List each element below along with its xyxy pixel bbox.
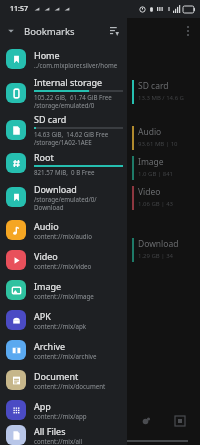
staticText: content://mix/all bbox=[34, 437, 83, 445]
staticText: 93.61 MB | 10 bbox=[138, 140, 178, 148]
staticText: Internal storage bbox=[34, 76, 103, 88]
button[interactable]: More options bbox=[179, 22, 197, 40]
staticText: 1.29 GB | 34 bbox=[138, 252, 174, 260]
button[interactable]: Video bbox=[132, 186, 200, 210]
staticText: content://mix/document bbox=[34, 382, 106, 390]
staticText: /storage/emulated/0/ bbox=[34, 195, 97, 203]
staticText: APK bbox=[34, 310, 51, 322]
staticText: Download bbox=[138, 238, 179, 250]
staticText: /storage/1A02-1AEE bbox=[34, 138, 92, 146]
button[interactable]: SD card bbox=[0, 111, 127, 148]
button[interactable]: Sort bbox=[104, 21, 124, 41]
staticText: 1.06 GB | 43 bbox=[138, 200, 174, 208]
staticText: Video bbox=[34, 250, 58, 262]
staticText: content://mix/audio bbox=[34, 232, 92, 240]
button[interactable]: Internal storage bbox=[0, 74, 127, 111]
button[interactable]: Root bbox=[0, 148, 127, 178]
button[interactable]: Bookmarks bbox=[0, 18, 127, 44]
staticText: Root bbox=[34, 151, 54, 163]
button[interactable]: Archive bbox=[0, 335, 127, 365]
button[interactable]: Home bbox=[0, 44, 127, 74]
staticText: Archive bbox=[34, 340, 66, 352]
staticText: Download bbox=[34, 203, 64, 211]
staticText: All Files bbox=[34, 425, 66, 437]
staticText: Audio bbox=[138, 126, 162, 138]
staticText: 821.57 MiB, 0 B Free bbox=[34, 168, 95, 176]
staticText: ../com.mixplorer.silver/home bbox=[34, 61, 118, 69]
staticText: /storage/emulated/0 bbox=[34, 101, 95, 109]
button[interactable]: Download bbox=[132, 238, 200, 262]
button[interactable]: Audio bbox=[132, 126, 200, 150]
button[interactable]: Image bbox=[132, 156, 200, 180]
button[interactable]: Select bbox=[172, 413, 188, 429]
staticText: 11:57 bbox=[10, 4, 28, 14]
button[interactable]: Audio bbox=[0, 215, 127, 245]
staticText: Home bbox=[34, 49, 60, 61]
button[interactable]: SD card bbox=[132, 80, 200, 104]
staticText: 13.3 MB / 14.6 G bbox=[138, 94, 184, 102]
staticText: content://mix/video bbox=[34, 262, 92, 270]
staticText: Document bbox=[34, 370, 79, 382]
staticText: 14.63 GiB, 14.62 GiB Free bbox=[34, 130, 109, 138]
button[interactable]: App bbox=[0, 395, 127, 425]
button[interactable]: Plugins bbox=[138, 413, 154, 429]
button[interactable]: Video bbox=[0, 245, 127, 275]
button[interactable]: Image bbox=[0, 275, 127, 305]
staticText: Bookmarks bbox=[24, 25, 75, 38]
button[interactable]: APK bbox=[0, 305, 127, 335]
button[interactable]: Download bbox=[0, 178, 127, 215]
staticText: 1.0 GB | 841 bbox=[138, 170, 174, 178]
button[interactable]: All Files bbox=[0, 425, 127, 445]
staticText: content://mix/apk bbox=[34, 322, 87, 330]
staticText: App bbox=[34, 400, 51, 412]
staticText: SD card bbox=[138, 80, 169, 92]
staticText: Video bbox=[138, 186, 161, 198]
staticText: Image bbox=[34, 280, 62, 292]
staticText: content://mix/archive bbox=[34, 352, 97, 360]
staticText: content://mix/app bbox=[34, 412, 87, 420]
button[interactable]: Document bbox=[0, 365, 127, 395]
staticText: content://mix/image bbox=[34, 292, 94, 300]
staticText: Image bbox=[138, 156, 164, 168]
staticText: Download bbox=[34, 183, 77, 195]
staticText: SD card bbox=[34, 113, 67, 125]
staticText: 105.22 GiB, 61.74 GiB Free bbox=[34, 93, 112, 101]
staticText: Audio bbox=[34, 220, 59, 232]
